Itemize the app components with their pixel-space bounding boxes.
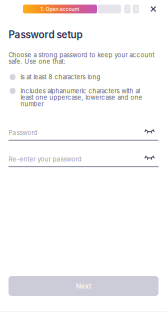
staticText: Password setup <box>8 29 82 40</box>
staticText: Choose a strong password to keep your ac… <box>8 51 154 65</box>
staticText: 2 <box>126 6 129 12</box>
button[interactable]: 3 <box>133 5 139 13</box>
button[interactable]: Close <box>146 5 160 13</box>
button[interactable]: Show Password <box>144 128 158 134</box>
button[interactable]: 2 <box>124 5 130 13</box>
staticText: 3 <box>134 6 137 12</box>
button[interactable]: Show Re-enter your password <box>144 155 158 160</box>
staticText: Next <box>76 282 91 290</box>
button[interactable]: 1. Open account <box>23 5 97 13</box>
staticText: includes alphanumeric characters with at… <box>20 87 142 108</box>
staticText: Password <box>8 129 37 136</box>
button[interactable]: Next <box>8 276 158 296</box>
staticText: 1. Open account <box>40 6 79 12</box>
staticText: Re-enter your password <box>8 155 81 163</box>
staticText: is at least 8 characters long <box>20 73 100 81</box>
